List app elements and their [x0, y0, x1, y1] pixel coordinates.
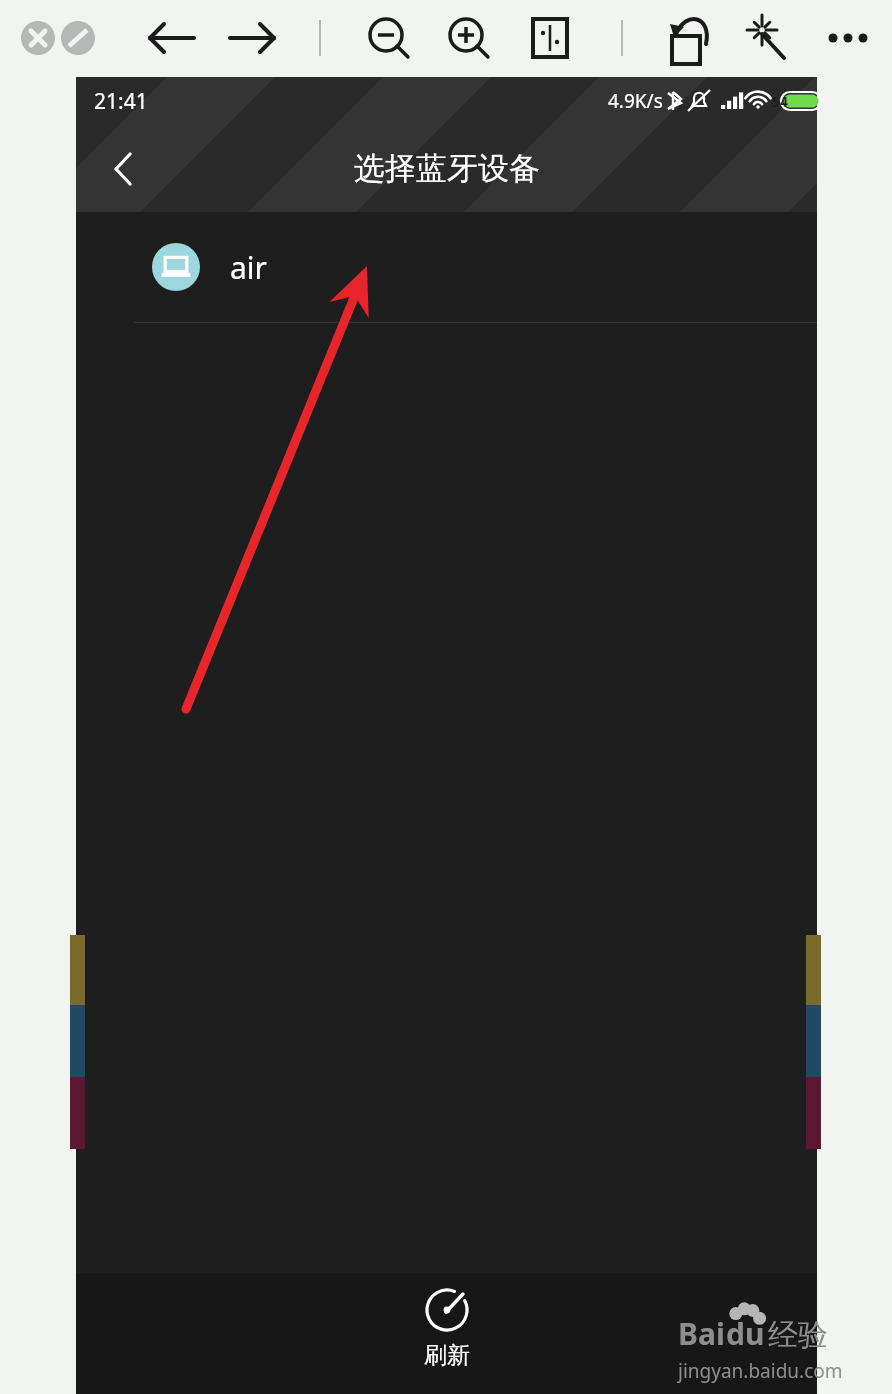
staticText: jingyan.baidu.com: [678, 1358, 843, 1384]
button[interactable]: 刷新: [387, 1287, 507, 1370]
button[interactable]: air: [76, 212, 817, 322]
staticText: 刷新: [424, 1341, 470, 1370]
staticText: 4.9K/s: [608, 88, 663, 114]
staticText: 54: [772, 92, 789, 111]
staticText: 21:41: [94, 87, 148, 116]
staticText: 选择蓝牙设备: [354, 149, 540, 188]
button[interactable]: Back: [98, 141, 154, 197]
staticText: 经验: [768, 1316, 828, 1354]
staticText: du: [726, 1313, 765, 1354]
staticText: Bai: [678, 1313, 725, 1354]
staticText: air: [230, 247, 267, 288]
